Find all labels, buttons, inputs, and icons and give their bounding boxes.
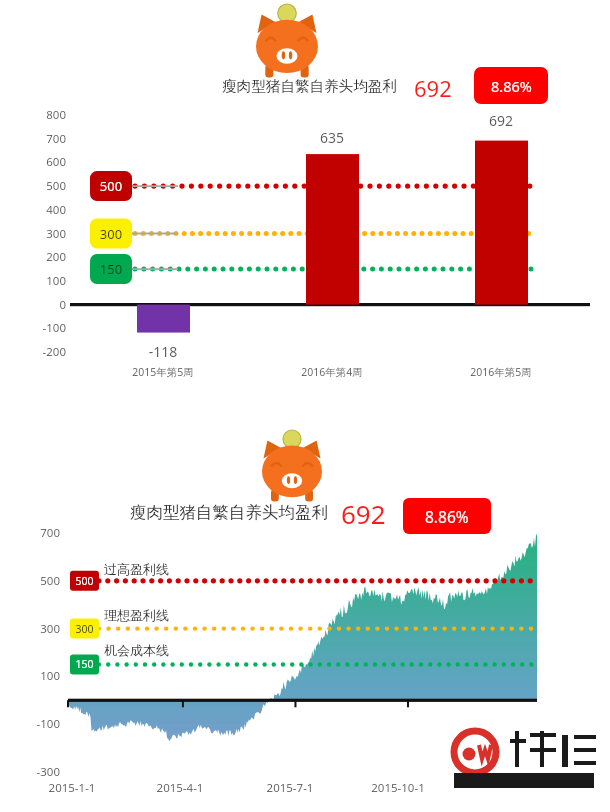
staticText: -118 bbox=[113, 342, 213, 361]
staticText: 2015-10-1 bbox=[353, 780, 443, 796]
staticText: 2015年第5周 bbox=[108, 365, 218, 379]
staticText: 692 bbox=[451, 111, 551, 130]
staticText: 理想盈利线 bbox=[104, 607, 169, 623]
staticText: 8.86% bbox=[491, 76, 532, 96]
staticText: 300 bbox=[70, 622, 99, 636]
staticText: 700 bbox=[18, 131, 66, 147]
staticText: 150 bbox=[90, 260, 132, 278]
staticText: 800 bbox=[18, 107, 66, 123]
button[interactable]: 8.86% bbox=[474, 67, 548, 104]
staticText: 2015-1-1 bbox=[27, 780, 117, 796]
staticText: 2015-7-1 bbox=[245, 780, 335, 796]
staticText: 100 bbox=[12, 668, 60, 684]
staticText: 瘦肉型猪自繁自养头均盈利 bbox=[222, 77, 398, 95]
staticText: 2015-4-1 bbox=[135, 780, 225, 796]
staticText: 600 bbox=[18, 154, 66, 170]
staticText: 100 bbox=[18, 273, 66, 289]
button[interactable]: 8.86% bbox=[403, 498, 491, 534]
staticText: 500 bbox=[70, 574, 99, 588]
staticText: 300 bbox=[12, 621, 60, 637]
staticText: 692 bbox=[341, 496, 386, 531]
button[interactable]: soozhu.com bbox=[447, 727, 597, 789]
staticText: 机会成本线 bbox=[104, 642, 169, 658]
staticText: 过高盈利线 bbox=[104, 561, 169, 577]
staticText: -200 bbox=[18, 344, 66, 360]
staticText: 瘦肉型猪自繁自养头均盈利 bbox=[130, 502, 328, 523]
staticText: 300 bbox=[18, 226, 66, 242]
staticText: 400 bbox=[18, 202, 66, 218]
staticText: 200 bbox=[18, 249, 66, 265]
staticText: 500 bbox=[90, 177, 132, 195]
staticText: 150 bbox=[70, 657, 99, 671]
staticText: 2016年第5周 bbox=[446, 365, 556, 379]
staticText: 2016年第4周 bbox=[277, 365, 387, 379]
staticText: 700 bbox=[12, 525, 60, 541]
staticText: -100 bbox=[18, 320, 66, 336]
staticText: 8.86% bbox=[425, 506, 469, 527]
staticText: 635 bbox=[282, 128, 382, 147]
staticText: 500 bbox=[12, 573, 60, 589]
staticText: 692 bbox=[414, 73, 452, 103]
staticText: 500 bbox=[18, 178, 66, 194]
staticText: 300 bbox=[90, 225, 132, 243]
staticText: 0 bbox=[18, 297, 66, 313]
staticText: -300 bbox=[12, 764, 60, 780]
staticText: -100 bbox=[12, 716, 60, 732]
